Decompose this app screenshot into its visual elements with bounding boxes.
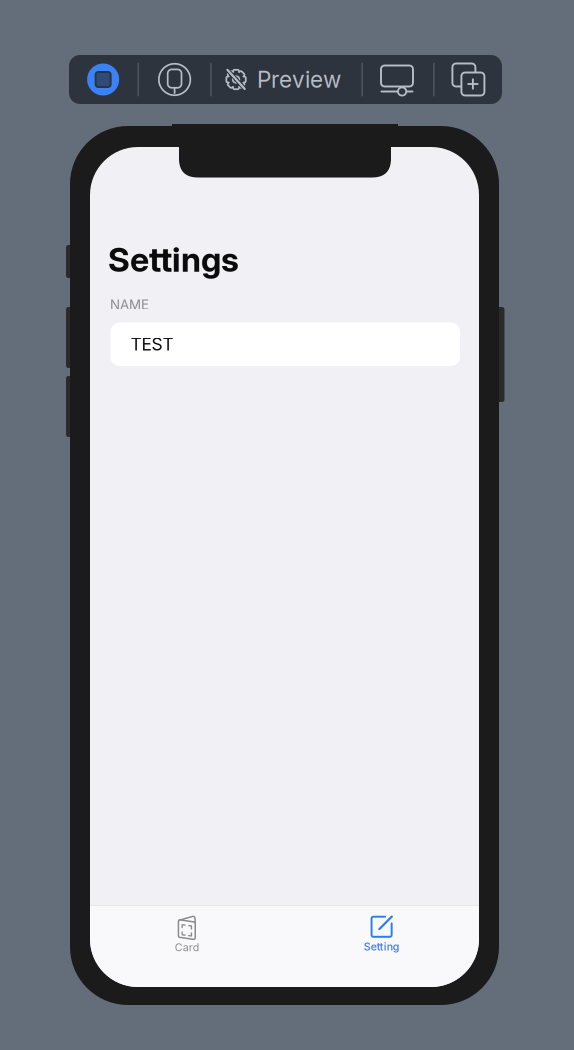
button[interactable]: Preview <box>212 55 361 104</box>
staticText: TEST <box>130 334 173 355</box>
button[interactable]: Duplicate preview <box>435 55 502 104</box>
button[interactable]: Stop preview <box>69 55 137 104</box>
button[interactable]: Card <box>90 906 284 963</box>
staticText: Card <box>175 941 200 954</box>
button[interactable]: Device settings <box>363 55 433 104</box>
button[interactable]: TEST <box>110 322 460 366</box>
staticText: Preview <box>257 66 341 93</box>
staticText: NAME <box>110 296 149 313</box>
staticText: Setting <box>364 940 400 953</box>
button[interactable]: Setting <box>284 906 479 963</box>
button[interactable]: Selectable mode <box>139 55 210 104</box>
staticText: Settings <box>108 239 239 280</box>
